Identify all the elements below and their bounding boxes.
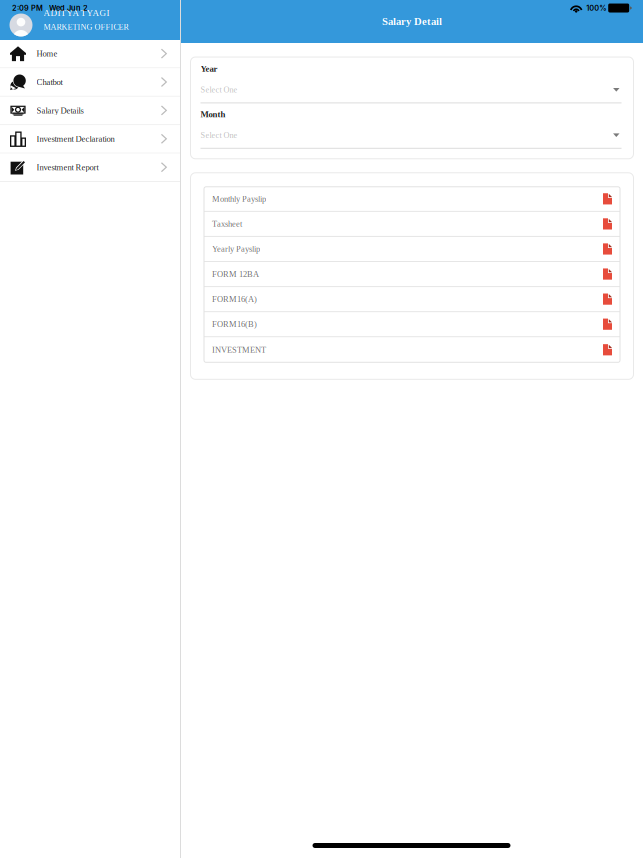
button[interactable]: INVESTMENT (204, 337, 620, 362)
staticText: FORM 12BA (212, 269, 259, 279)
button[interactable]: Salary Details (0, 97, 180, 125)
staticText: 2:09 PM (12, 3, 43, 12)
staticText: MARKETING OFFICER (43, 22, 128, 32)
button[interactable]: Monthly Payslip (204, 187, 620, 212)
staticText: Yearly Payslip (212, 244, 260, 254)
staticText: Monthly Payslip (212, 194, 266, 203)
button[interactable]: Investment Declaration (0, 125, 180, 154)
staticText: INVESTMENT (212, 345, 266, 354)
staticText: Investment Report (36, 162, 98, 172)
staticText: Salary Detail (382, 16, 442, 27)
staticText: Wed Jun 2 (49, 3, 88, 12)
button[interactable]: Home (0, 40, 180, 68)
button[interactable]: Taxsheet (204, 212, 620, 237)
staticText: Select One (200, 85, 237, 94)
staticText: Taxsheet (212, 219, 242, 229)
staticText: ADITYA TYAGI (43, 8, 109, 18)
button[interactable]: FORM16(B) (204, 312, 620, 337)
staticText: Salary Details (36, 106, 83, 115)
staticText: 100% (586, 3, 606, 12)
staticText: Year (200, 64, 217, 74)
button[interactable]: Year (200, 64, 621, 103)
staticText: Chatbot (36, 77, 62, 87)
button[interactable]: FORM 12BA (204, 262, 620, 287)
button[interactable]: Investment Report (0, 154, 180, 182)
button[interactable]: Yearly Payslip (204, 237, 620, 262)
button[interactable]: FORM16(A) (204, 287, 620, 312)
staticText: Investment Declaration (36, 134, 114, 144)
staticText: FORM16(B) (212, 319, 257, 329)
staticText: Month (200, 109, 225, 119)
button[interactable]: Month (200, 109, 621, 149)
button[interactable]: Chatbot (0, 68, 180, 97)
staticText: FORM16(A) (212, 294, 257, 304)
staticText: Home (36, 49, 57, 58)
staticText: Select One (200, 131, 237, 140)
